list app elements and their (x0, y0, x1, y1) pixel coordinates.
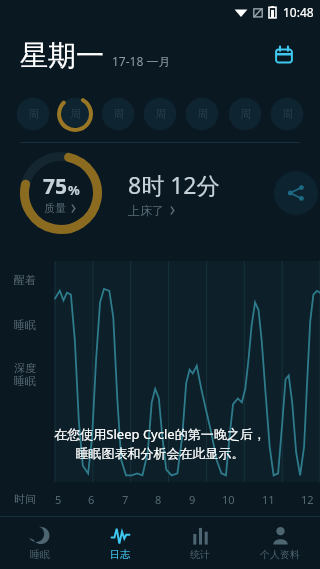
staticText: 周 (197, 107, 208, 121)
staticText: 周 (240, 107, 251, 121)
staticText: 睡眠 (14, 318, 36, 332)
staticText: 17-18 一月 (112, 53, 171, 69)
staticText: 周 (28, 107, 39, 121)
staticText: 在您使用Sleep Cycle的第一晚之后， 睡眠图表和分析会在此显示。 (54, 425, 266, 462)
staticText: 周 (70, 107, 81, 121)
button[interactable]: Day 7 (268, 95, 306, 133)
staticText: 周 (282, 107, 293, 121)
button[interactable]: Share (274, 171, 318, 215)
staticText: 8时 12分 (128, 169, 220, 200)
staticText: 质量 (44, 201, 66, 215)
button[interactable]: Day 1 (14, 95, 52, 133)
button[interactable]: Calendar (264, 35, 304, 75)
button[interactable]: 75 (18, 150, 104, 236)
staticText: 深度 睡眠 (14, 361, 36, 388)
button[interactable]: Day 2 (56, 95, 94, 133)
button[interactable]: 睡眠 (0, 517, 80, 569)
staticText: 周 (155, 107, 166, 121)
staticText: 10 (222, 492, 235, 507)
staticText: 统计 (190, 548, 210, 561)
button[interactable]: 统计 (160, 517, 240, 569)
button[interactable]: Day 6 (226, 95, 264, 133)
staticText: 7 (122, 492, 129, 507)
staticText: 12 (301, 492, 314, 507)
staticText: 10:48 (283, 4, 314, 20)
staticText: 75 (43, 172, 68, 201)
staticText: % (68, 181, 80, 199)
staticText: 睡眠 (30, 548, 50, 561)
button[interactable]: 个人资料 (240, 517, 320, 569)
staticText: 5 (55, 492, 62, 507)
button[interactable]: Day 5 (183, 95, 221, 133)
staticText: 日志 (110, 548, 130, 561)
button[interactable]: Day 3 (99, 95, 137, 133)
staticText: 9 (189, 492, 196, 507)
button[interactable]: 8时 12分 (128, 169, 220, 218)
staticText: 时间 (14, 492, 36, 506)
staticText: 11 (262, 492, 275, 507)
staticText: 6 (88, 492, 95, 507)
staticText: 上床了 (128, 203, 164, 218)
button[interactable]: Day 4 (141, 95, 179, 133)
staticText: 星期一 (20, 38, 104, 73)
staticText: 醒着 (14, 273, 36, 287)
staticText: 周 (113, 107, 124, 121)
staticText: 8 (155, 492, 162, 507)
staticText: 个人资料 (260, 548, 300, 561)
button[interactable]: 日志 (80, 517, 160, 569)
